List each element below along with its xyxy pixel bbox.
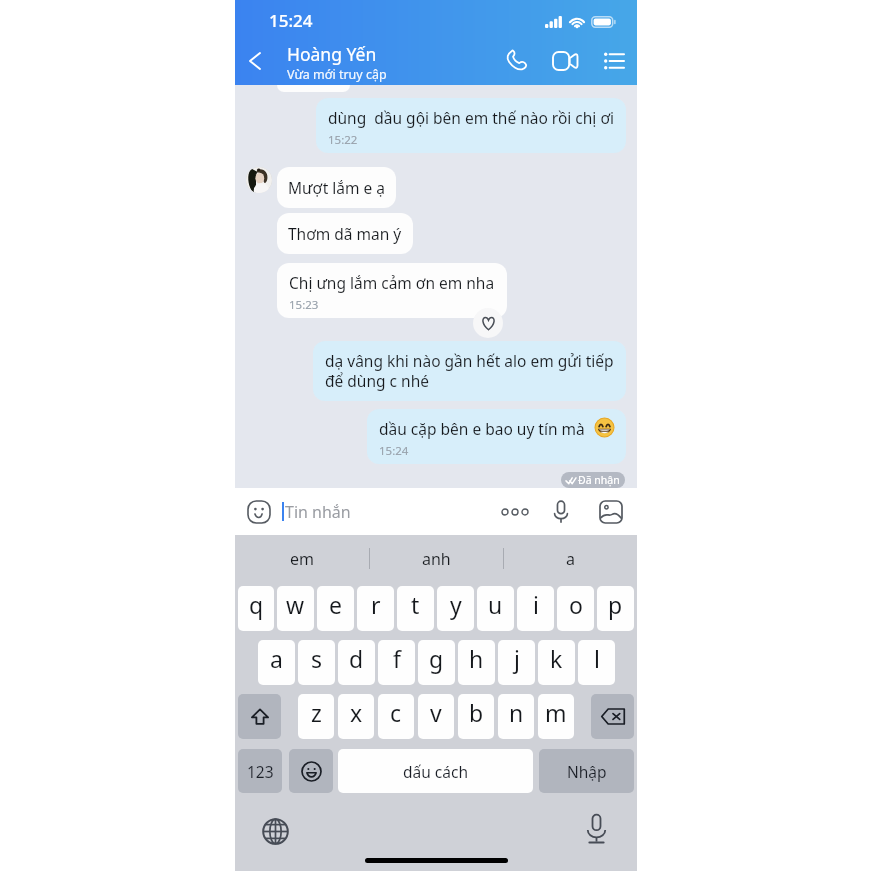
button[interactable]: Nhập — [539, 749, 634, 793]
staticText: 15:24 — [269, 9, 313, 32]
button[interactable]: m — [538, 694, 574, 739]
staticText: dùng dầu gội bên em thế nào rồi chị ơi — [328, 107, 614, 128]
staticText: t — [411, 589, 420, 620]
button[interactable]: g — [418, 640, 455, 685]
staticText: a — [566, 548, 575, 570]
staticText: z — [311, 697, 322, 728]
button[interactable]: Thơm dã man ý — [277, 213, 413, 254]
staticText: Tin nhắn — [285, 501, 351, 523]
staticText: m — [545, 697, 567, 728]
button[interactable]: q — [238, 586, 274, 631]
staticText: 123 — [247, 761, 274, 782]
staticText: Hoàng Yến — [287, 42, 377, 66]
staticText: p — [608, 589, 623, 620]
staticText: v — [430, 697, 442, 728]
staticText: dầu cặp bên e bao uy tín mà — [379, 418, 585, 439]
staticText: 15:23 — [289, 297, 319, 313]
button[interactable]: x — [338, 694, 374, 739]
button[interactable]: Change language — [261, 817, 289, 845]
button[interactable]: s — [298, 640, 335, 685]
staticText: Nhập — [567, 761, 607, 782]
button[interactable]: em — [235, 535, 369, 582]
staticText: k — [550, 643, 563, 674]
staticText: x — [350, 697, 363, 728]
staticText: em — [290, 548, 314, 570]
button[interactable]: More options — [496, 493, 534, 531]
button[interactable]: dùng dầu gội bên em thế nào rồi chị ơi — [316, 98, 626, 153]
button[interactable]: a — [504, 535, 637, 582]
staticText: q — [249, 589, 264, 620]
button[interactable]: c — [378, 694, 414, 739]
button[interactable]: dấu cách — [338, 749, 533, 793]
button[interactable]: v — [418, 694, 454, 739]
button[interactable]: r — [357, 586, 394, 631]
button[interactable]: b — [458, 694, 494, 739]
button[interactable]: anh — [370, 535, 503, 582]
button[interactable]: w — [277, 586, 314, 631]
button[interactable]: k — [538, 640, 575, 685]
button[interactable]: Voice input — [580, 813, 612, 845]
staticText: anh — [422, 548, 451, 570]
staticText: i — [533, 589, 539, 620]
button[interactable]: p — [597, 586, 634, 631]
button[interactable]: Menu — [591, 38, 637, 83]
button[interactable]: a — [258, 640, 295, 685]
staticText: 15:24 — [379, 443, 409, 459]
staticText: dấu cách — [403, 761, 468, 782]
button[interactable]: dạ vâng khi nào gần hết alo em gửi tiếp … — [313, 341, 626, 401]
staticText: e — [329, 589, 342, 620]
staticText: r — [371, 589, 381, 620]
button[interactable]: Chị ưng lắm cảm ơn em nha — [277, 263, 507, 318]
button[interactable]: Emoji — [247, 500, 271, 524]
button[interactable]: Send image — [592, 493, 630, 531]
button[interactable]: y — [437, 586, 474, 631]
button[interactable]: d — [338, 640, 375, 685]
button[interactable]: n — [498, 694, 534, 739]
staticText: y — [450, 589, 462, 620]
button[interactable]: j — [498, 640, 535, 685]
button[interactable]: u — [477, 586, 514, 631]
button[interactable]: Voice message — [542, 493, 580, 531]
staticText: Mượt lắm e ạ — [288, 177, 385, 198]
staticText: o — [569, 589, 583, 620]
button[interactable]: e — [317, 586, 354, 631]
button[interactable]: Call — [493, 38, 539, 83]
staticText: l — [594, 643, 600, 674]
staticText: j — [514, 643, 520, 674]
staticText: c — [390, 697, 402, 728]
staticText: g — [429, 643, 444, 674]
staticText: w — [286, 589, 305, 620]
staticText: n — [509, 697, 524, 728]
button[interactable]: React with heart — [473, 308, 503, 338]
staticText: Đã nhận — [578, 473, 620, 487]
button[interactable]: f — [378, 640, 415, 685]
button[interactable]: Back — [235, 38, 275, 83]
staticText: dạ vâng khi nào gần hết alo em gửi tiếp … — [325, 350, 614, 392]
staticText: s — [311, 643, 323, 674]
staticText: a — [270, 643, 283, 674]
button[interactable]: Mượt lắm e ạ — [277, 167, 396, 208]
button[interactable]: o — [557, 586, 594, 631]
button[interactable]: Shift — [238, 694, 281, 739]
button[interactable]: t — [397, 586, 434, 631]
button[interactable]: 123 — [238, 749, 282, 793]
staticText: d — [349, 643, 364, 674]
staticText: Chị ưng lắm cảm ơn em nha — [289, 272, 495, 293]
button[interactable]: Video call — [542, 38, 588, 83]
button[interactable]: z — [298, 694, 334, 739]
staticText: b — [469, 697, 484, 728]
button[interactable]: l — [578, 640, 615, 685]
button[interactable]: dầu cặp bên e bao uy tín mà — [367, 409, 626, 464]
button[interactable]: Backspace — [591, 694, 634, 739]
staticText: Thơm dã man ý — [288, 223, 402, 244]
staticText: f — [393, 643, 401, 674]
staticText: u — [488, 589, 503, 620]
button[interactable]: i — [517, 586, 554, 631]
staticText: 15:22 — [328, 132, 358, 148]
staticText: h — [469, 643, 484, 674]
button[interactable]: h — [458, 640, 495, 685]
button[interactable]: Emoji keyboard — [289, 749, 333, 793]
staticText: Vừa mới truy cập — [287, 66, 387, 83]
